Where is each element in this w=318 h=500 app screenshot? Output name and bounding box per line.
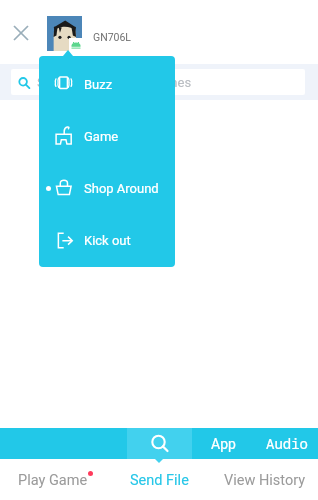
staticText: Shop Around — [84, 181, 159, 196]
button[interactable]: Play Game — [0, 463, 106, 497]
button[interactable]: App — [192, 428, 255, 459]
staticText: Audio — [266, 434, 308, 453]
staticText: Send File — [130, 472, 189, 489]
button[interactable]: Shop Around — [39, 162, 175, 214]
button[interactable]: View History — [212, 463, 318, 497]
button[interactable]: Search for files and games — [11, 69, 305, 95]
staticText: App — [211, 436, 236, 452]
staticText: Search for files and games — [37, 75, 192, 90]
staticText: View History — [224, 472, 306, 489]
button[interactable]: Buzz — [39, 58, 175, 110]
button[interactable]: Kick out — [39, 214, 175, 266]
staticText: Buzz — [84, 77, 113, 92]
staticText: Kick out — [84, 233, 131, 248]
button[interactable]: Audio — [255, 428, 318, 459]
staticText: GN706L — [93, 31, 132, 43]
staticText: Play Game — [18, 472, 88, 489]
button[interactable]: Send File — [106, 463, 212, 497]
button[interactable]: Search — [127, 428, 192, 459]
button[interactable]: Game — [39, 110, 175, 162]
button[interactable]: Close — [7, 19, 34, 46]
staticText: Game — [84, 129, 119, 144]
